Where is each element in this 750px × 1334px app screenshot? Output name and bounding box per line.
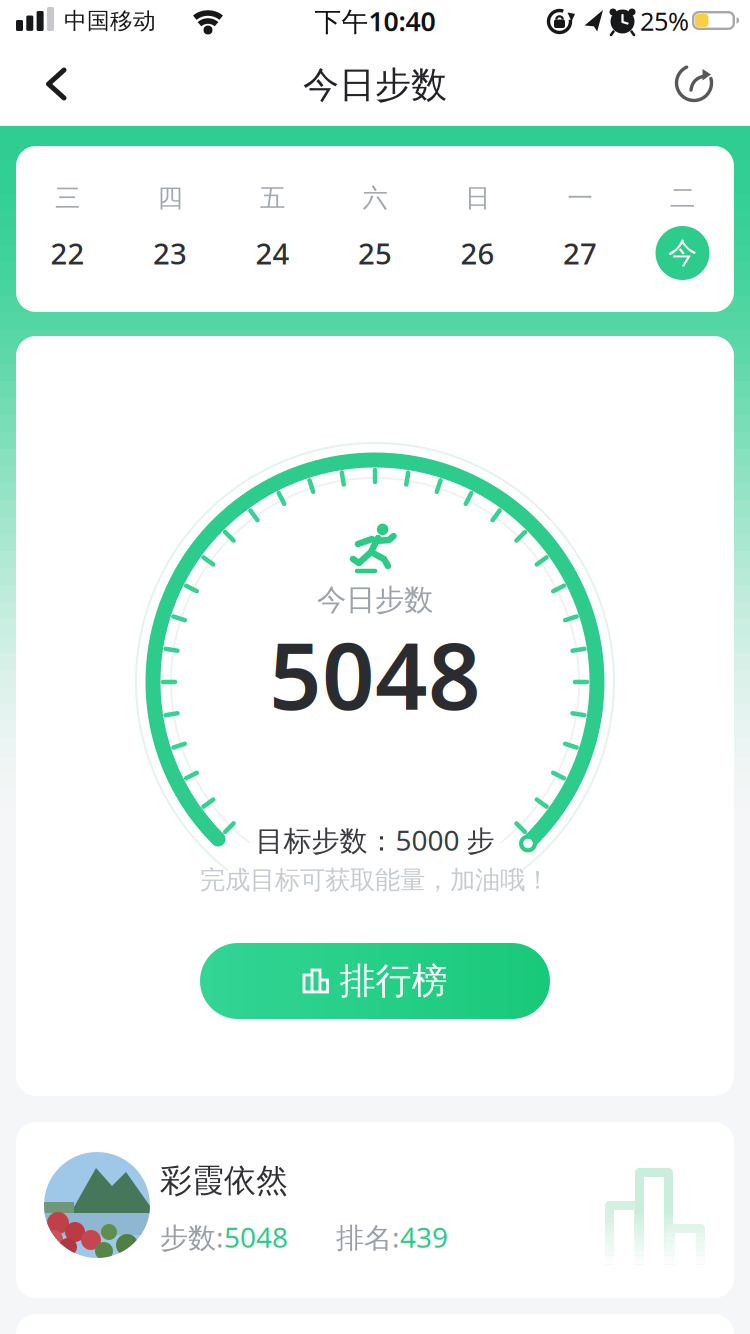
staticText: 中国移动 xyxy=(64,7,156,35)
staticText: 22 xyxy=(50,233,84,272)
staticText: 步数: xyxy=(160,1218,224,1256)
staticText: 五 xyxy=(260,182,285,213)
button[interactable]: Back xyxy=(18,53,78,113)
button[interactable]: 五 xyxy=(221,159,324,298)
staticText: 439 xyxy=(400,1218,448,1256)
staticText: 23 xyxy=(153,233,187,272)
staticText: 今 xyxy=(668,235,697,271)
staticText: 彩霞依然 xyxy=(160,1161,288,1200)
staticText: 一 xyxy=(567,182,592,213)
staticText: 26 xyxy=(460,233,494,272)
button[interactable]: 二 xyxy=(631,159,734,298)
staticText: 四 xyxy=(157,182,182,213)
button[interactable]: 一 xyxy=(529,159,631,298)
button[interactable]: 三 xyxy=(16,159,119,298)
staticText: 三 xyxy=(55,182,80,213)
staticText: 5048 xyxy=(224,1218,288,1256)
staticText: 日 xyxy=(465,182,490,213)
button[interactable]: 日 xyxy=(426,159,529,298)
staticText: 今日步数 xyxy=(303,63,447,107)
staticText: 排行榜 xyxy=(339,959,447,1003)
button[interactable]: 六 xyxy=(324,159,426,298)
staticText: 24 xyxy=(255,233,289,272)
staticText: 目标步数：5000 步 xyxy=(255,821,494,859)
staticText: 下午10:40 xyxy=(314,3,435,39)
button[interactable]: Refresh xyxy=(662,51,726,115)
staticText: 二 xyxy=(670,182,695,213)
staticText: 完成目标可获取能量，加油哦！ xyxy=(200,864,550,895)
button[interactable]: 四 xyxy=(119,159,221,298)
button[interactable]: 彩霞依然 xyxy=(16,1122,734,1298)
staticText: 27 xyxy=(563,233,597,272)
staticText: 排名: xyxy=(336,1218,400,1256)
staticText: 25% xyxy=(640,4,689,38)
button[interactable]: 排行榜 xyxy=(200,943,550,1019)
staticText: 六 xyxy=(362,182,387,213)
staticText: 5048 xyxy=(269,613,481,735)
staticText: 25 xyxy=(358,233,392,272)
staticText: 今日步数 xyxy=(317,582,433,618)
